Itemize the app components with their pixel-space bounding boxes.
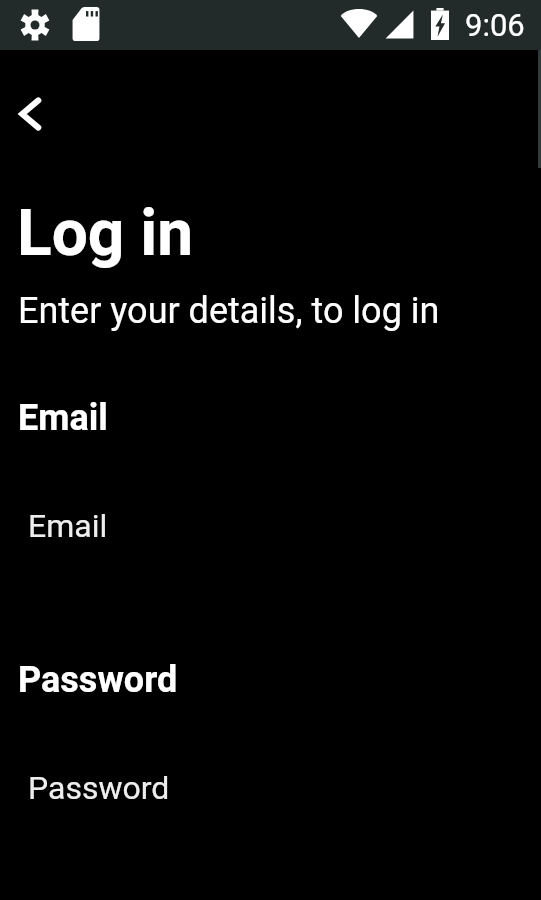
button[interactable]: Password <box>0 734 541 844</box>
button[interactable]: Back <box>0 64 72 164</box>
staticText: Password <box>28 769 170 807</box>
staticText: Password <box>18 659 178 701</box>
button[interactable]: Email <box>0 472 541 582</box>
staticText: 9:06 <box>465 7 525 43</box>
staticText: Email <box>28 507 108 545</box>
staticText: Email <box>18 397 108 439</box>
staticText: Log in <box>17 196 194 271</box>
staticText: Enter your details, to log in <box>18 290 440 332</box>
